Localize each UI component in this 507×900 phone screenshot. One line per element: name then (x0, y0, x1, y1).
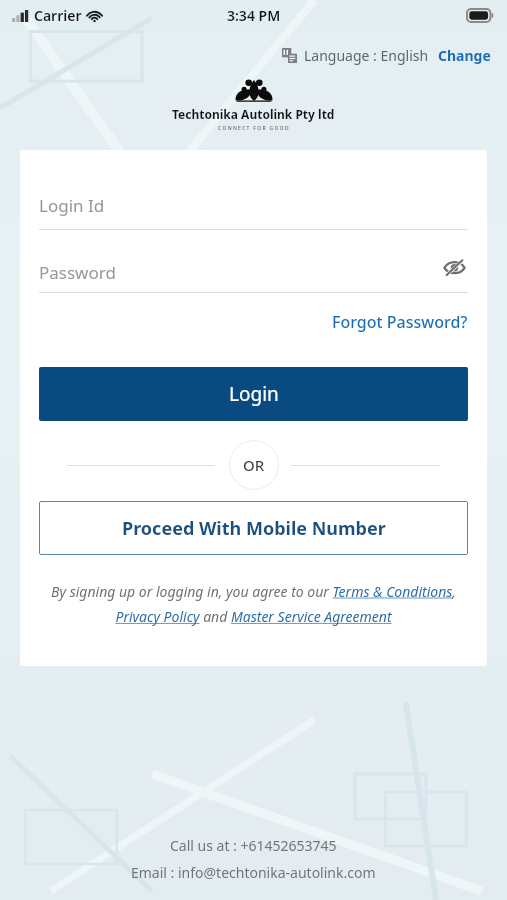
staticText: By signing up or logging in, you agree t… (41, 582, 466, 626)
button[interactable]: Change (438, 46, 491, 65)
staticText: Carrier (34, 6, 82, 25)
button[interactable]: Login Id (39, 194, 468, 230)
button[interactable]: Show password (440, 256, 468, 278)
button[interactable]: Forgot Password? (332, 309, 468, 335)
staticText: Password (39, 261, 116, 284)
button[interactable]: By signing up or logging in, you agree t… (41, 582, 466, 626)
staticText: Forgot Password? (332, 311, 468, 333)
staticText: OR (243, 455, 265, 475)
staticText: Proceed With Mobile Number (122, 516, 386, 541)
button[interactable]: Login (39, 367, 468, 421)
staticText: Email : info@techtonika-autolink.com (131, 863, 376, 882)
staticText: 3:34 PM (227, 6, 281, 25)
button[interactable]: Password (39, 261, 468, 293)
staticText: Change (438, 46, 491, 65)
staticText: Login Id (39, 194, 105, 217)
staticText: Language : English (304, 46, 429, 65)
staticText: Techtonika Autolink Pty ltd (172, 106, 335, 122)
button[interactable]: Proceed With Mobile Number (39, 501, 468, 555)
staticText: Login (229, 381, 279, 407)
staticText: Call us at : +61452653745 (170, 836, 337, 855)
staticText: C O N N E C T F O R G O O D (218, 125, 289, 132)
